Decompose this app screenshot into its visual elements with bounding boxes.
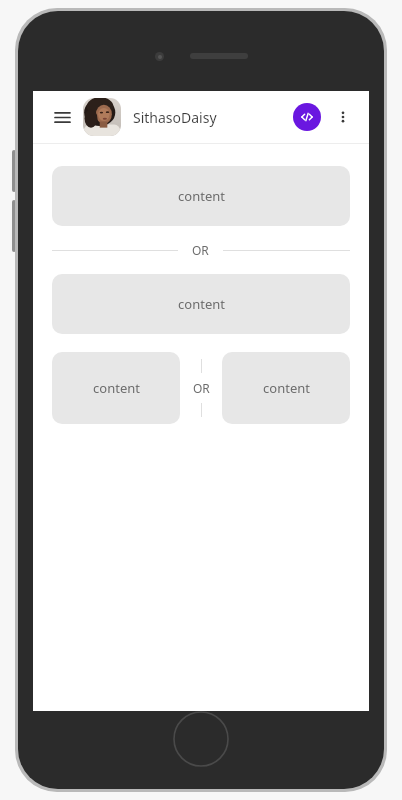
staticText: OR — [193, 380, 210, 396]
button[interactable]: View source code — [293, 103, 321, 131]
staticText: OR — [192, 242, 209, 258]
button[interactable]: content — [52, 352, 180, 424]
staticText: content — [93, 379, 140, 397]
staticText: SithasoDaisy — [133, 108, 217, 127]
button[interactable]: content — [222, 352, 350, 424]
staticText: content — [178, 295, 225, 313]
button[interactable]: Open navigation menu — [47, 102, 77, 132]
button[interactable]: content — [52, 274, 350, 334]
button[interactable]: content — [52, 166, 350, 226]
button[interactable]: Profile photo — [83, 98, 121, 136]
staticText: content — [178, 187, 225, 205]
button[interactable]: More options — [329, 103, 357, 131]
staticText: content — [263, 379, 310, 397]
